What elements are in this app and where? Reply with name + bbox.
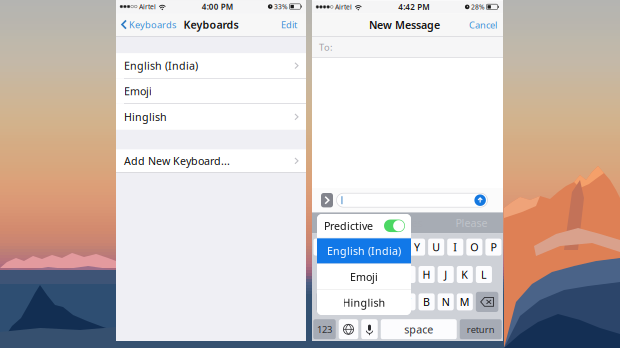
button[interactable]: P bbox=[485, 239, 501, 256]
button[interactable]: space bbox=[381, 319, 457, 339]
button[interactable]: O bbox=[466, 239, 482, 256]
staticText: Add New Keyboard... bbox=[124, 154, 230, 168]
button[interactable]: W bbox=[333, 239, 349, 256]
staticText: Predictive bbox=[324, 219, 373, 233]
button[interactable]: Switch keyboard bbox=[339, 319, 358, 339]
staticText: Y bbox=[414, 240, 420, 254]
staticText: P bbox=[490, 240, 496, 254]
button[interactable]: L bbox=[476, 266, 492, 283]
staticText: Emoji bbox=[124, 84, 152, 98]
button[interactable]: Hinglish bbox=[317, 290, 411, 315]
staticText: Emoji bbox=[350, 270, 378, 284]
button[interactable]: Send bbox=[474, 194, 486, 206]
staticText: R bbox=[375, 240, 382, 254]
staticText: English (India) bbox=[327, 244, 401, 258]
staticText: Keyboards bbox=[129, 18, 176, 31]
button[interactable]: K bbox=[457, 266, 473, 283]
button[interactable]: Emoji bbox=[317, 264, 411, 289]
button[interactable]: return bbox=[460, 319, 502, 339]
staticText: O bbox=[470, 240, 478, 254]
button[interactable]: X bbox=[361, 293, 377, 310]
staticText: 4:42 PM bbox=[398, 2, 429, 12]
button[interactable]: B bbox=[418, 293, 435, 310]
staticText: I bbox=[453, 240, 457, 254]
staticText: Keyboards bbox=[183, 17, 238, 32]
button[interactable]: R bbox=[371, 239, 387, 256]
button[interactable]: English (India) bbox=[116, 53, 306, 78]
button[interactable]: Z bbox=[342, 293, 358, 310]
staticText: K bbox=[461, 267, 468, 282]
button[interactable]: Dictate bbox=[361, 319, 378, 339]
button[interactable]: Cancel bbox=[469, 13, 503, 36]
staticText: D bbox=[365, 267, 373, 282]
button[interactable]: N bbox=[438, 293, 454, 310]
staticText: 4:00 PM bbox=[202, 1, 233, 12]
staticText: Please bbox=[455, 216, 487, 230]
staticText: N bbox=[442, 295, 450, 309]
staticText: Hinglish bbox=[124, 110, 167, 124]
staticText: English (India) bbox=[124, 59, 198, 73]
staticText: Cancel bbox=[469, 19, 497, 31]
button[interactable]: English (India) bbox=[317, 238, 411, 264]
staticText: To: bbox=[319, 41, 333, 53]
staticText: New Message bbox=[369, 18, 440, 32]
staticText: J bbox=[444, 267, 447, 282]
staticText: Airtel bbox=[335, 2, 352, 11]
staticText: Airtel bbox=[139, 2, 156, 11]
staticText: imes bbox=[331, 216, 355, 230]
staticText: return bbox=[467, 323, 495, 335]
button[interactable]: Hinglish bbox=[116, 104, 306, 130]
button[interactable]: Add New Keyboard... bbox=[116, 149, 306, 172]
button[interactable]: Delete bbox=[476, 292, 498, 312]
staticText: H bbox=[423, 267, 431, 282]
staticText: W bbox=[336, 240, 346, 254]
staticText: Z bbox=[347, 295, 353, 309]
button[interactable]: M bbox=[457, 293, 473, 310]
button[interactable]: S bbox=[342, 266, 358, 283]
staticText: S bbox=[347, 267, 353, 282]
staticText: B bbox=[423, 295, 430, 309]
button[interactable]: H bbox=[419, 266, 435, 283]
staticText: X bbox=[366, 295, 372, 309]
staticText: 123 bbox=[317, 323, 332, 335]
button[interactable]: V bbox=[399, 293, 415, 310]
button[interactable]: E bbox=[352, 239, 368, 256]
staticText: space bbox=[404, 322, 433, 336]
button[interactable]: Edit bbox=[281, 13, 306, 36]
staticText: T bbox=[395, 240, 401, 254]
button[interactable]: U bbox=[428, 239, 444, 256]
button[interactable]: C bbox=[380, 293, 396, 310]
staticText: Edit bbox=[281, 18, 297, 31]
staticText: E bbox=[357, 240, 363, 254]
staticText: 28% bbox=[471, 2, 485, 11]
staticText: 33% bbox=[274, 2, 288, 11]
staticText: L bbox=[481, 267, 487, 282]
button[interactable]: G bbox=[399, 266, 416, 283]
button[interactable]: D bbox=[361, 266, 377, 283]
button[interactable]: Y bbox=[409, 239, 425, 256]
staticText: U bbox=[432, 240, 440, 254]
staticText: M bbox=[460, 295, 470, 309]
staticText: Hinglish bbox=[342, 295, 385, 310]
button[interactable]: App drawer bbox=[321, 193, 333, 207]
staticText: Times bbox=[392, 216, 422, 230]
button[interactable]: I bbox=[447, 239, 463, 256]
button[interactable]: Keyboards bbox=[116, 13, 176, 36]
button[interactable]: Q bbox=[313, 239, 330, 256]
button[interactable]: J bbox=[438, 266, 454, 283]
button[interactable]: Emoji bbox=[116, 79, 306, 103]
button[interactable]: 123 bbox=[313, 319, 336, 339]
button[interactable]: T bbox=[390, 239, 406, 256]
